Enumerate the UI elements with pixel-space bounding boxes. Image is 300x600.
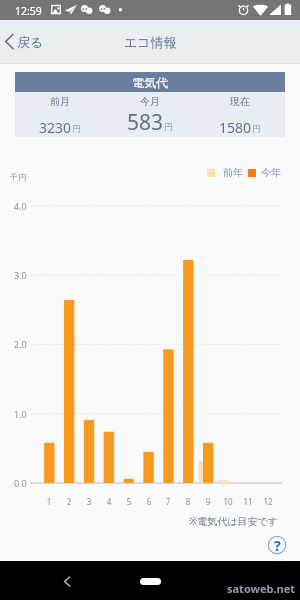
staticText: 4 [100,496,118,507]
staticText: 2.0 [14,338,27,350]
staticText: 6 [140,496,158,507]
staticText: エコ情報 [124,34,177,50]
staticText: 今年 [261,166,281,179]
staticText: 3 [80,496,98,507]
staticText: 583 [127,108,164,137]
staticText: 4.0 [14,200,27,212]
staticText: 8 [179,496,197,507]
staticText: 0.0 [14,477,27,489]
staticText: 7 [159,496,177,507]
staticText: 現在 [230,95,250,108]
button[interactable]: Home [140,578,161,585]
staticText: 5 [120,496,138,507]
staticText: 3.0 [14,269,27,281]
staticText: 前月 [50,95,70,108]
button[interactable]: Back [56,571,77,592]
staticText: 前年 [223,166,243,179]
staticText: 円 [252,124,261,135]
staticText: 12 [259,496,277,507]
staticText: 9 [199,496,217,507]
staticText: 1 [40,496,58,507]
staticText: 2 [60,496,78,507]
staticText: 円 [164,122,173,133]
staticText: 12:59 [15,4,42,18]
staticText: 円 [72,124,81,135]
staticText: ? [274,536,281,555]
staticText: 11 [239,496,257,507]
staticText: 戻る [17,34,44,50]
staticText: 1580 [219,118,252,137]
staticText: satoweb.net [227,581,296,596]
staticText: 電気代 [132,75,168,90]
staticText: 今月 [140,95,160,108]
staticText: 10 [219,496,237,507]
staticText: 3230 [39,118,72,137]
button[interactable]: Help [267,535,287,555]
staticText: ※電気代は目安です [189,514,279,528]
staticText: 千円 [10,172,26,182]
button[interactable]: 戻る [0,29,52,54]
staticText: 1.0 [14,408,27,420]
